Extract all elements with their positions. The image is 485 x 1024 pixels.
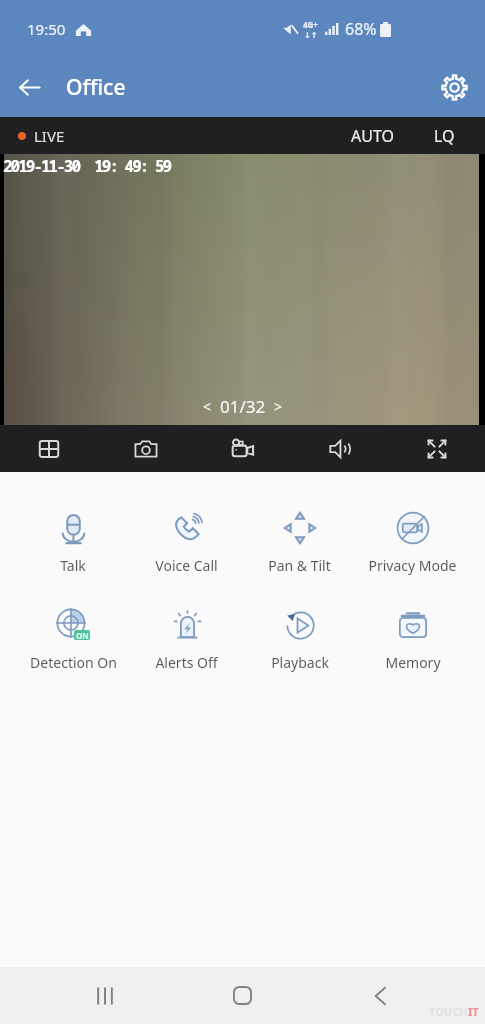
staticText: TOUCH (429, 1004, 468, 1019)
staticText: Talk (60, 556, 86, 575)
staticText: 2019-11-30 19: 49: 59 (3, 155, 171, 177)
staticText: 19:50 (27, 19, 66, 39)
button[interactable]: Split view (0, 425, 97, 472)
button[interactable]: Talk (16, 511, 130, 575)
button[interactable]: ON (16, 608, 130, 672)
button[interactable]: LQ (408, 117, 485, 154)
staticText: Voice Call (155, 556, 218, 575)
button[interactable]: Voice Call (130, 511, 243, 575)
button[interactable]: Pan & Tilt (243, 511, 356, 575)
button[interactable]: Settings (429, 59, 479, 115)
staticText: ↓↑ (304, 31, 318, 40)
button[interactable]: Recents (36, 967, 173, 1024)
staticText: Playback (271, 653, 329, 672)
staticText: AUTO (351, 125, 394, 146)
button[interactable]: Sound (291, 425, 388, 472)
button[interactable]: Back (311, 967, 449, 1024)
staticText: Detection On (30, 653, 117, 672)
staticText: Office (66, 73, 126, 102)
button[interactable]: Alerts Off (130, 608, 243, 672)
staticText: LIVE (34, 126, 65, 146)
button[interactable]: Privacy Mode (356, 511, 469, 575)
staticText: < (203, 397, 212, 416)
button[interactable]: Back (0, 58, 58, 116)
button[interactable]: Record (194, 425, 291, 472)
staticText: > (274, 397, 283, 416)
staticText: LQ (434, 125, 455, 146)
staticText: 68% (345, 18, 377, 40)
staticText: Memory (385, 653, 441, 672)
staticText: Alerts Off (155, 653, 218, 672)
button[interactable]: Home (173, 967, 311, 1024)
staticText: ON (76, 630, 89, 640)
button[interactable]: AUTO (337, 117, 408, 154)
button[interactable]: Fullscreen (388, 425, 485, 472)
button[interactable]: Memory (356, 608, 469, 672)
staticText: Privacy Mode (368, 556, 457, 575)
staticText: Pan & Tilt (268, 556, 331, 575)
staticText: 01/32 (220, 395, 266, 418)
button[interactable]: Playback (243, 608, 356, 672)
staticText: 4G+ (303, 19, 318, 30)
button[interactable]: Snapshot (97, 425, 194, 472)
staticText: IT (468, 1004, 479, 1019)
